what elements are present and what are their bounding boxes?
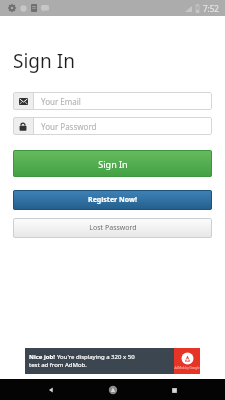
other: AdMob by Google [174, 348, 200, 374]
button[interactable]: Back [41, 380, 61, 400]
staticText: AdMob by Google [174, 366, 200, 370]
staticText: Your Email [41, 96, 81, 107]
staticText: Nice job! [29, 353, 55, 361]
staticText: You're displaying a 320 x 50 [57, 353, 135, 361]
button[interactable]: Lost Password [13, 218, 212, 238]
button[interactable]: Your Password [13, 117, 212, 135]
button[interactable]: Recents [164, 380, 184, 400]
staticText: Sign In [98, 158, 128, 170]
staticText: test ad from AdMob. [29, 361, 87, 369]
button[interactable]: Home [103, 380, 123, 400]
button[interactable]: Your Email [13, 92, 212, 110]
staticText: Sign In [13, 48, 75, 74]
staticText: 7:52 [203, 3, 219, 14]
button[interactable]: Nice job! [25, 348, 200, 374]
button[interactable]: Register Now! [13, 190, 212, 210]
button[interactable]: Sign In [13, 150, 212, 177]
staticText: Your Password [41, 121, 97, 132]
staticText: Register Now! [88, 195, 137, 205]
staticText: Lost Password [89, 223, 137, 233]
